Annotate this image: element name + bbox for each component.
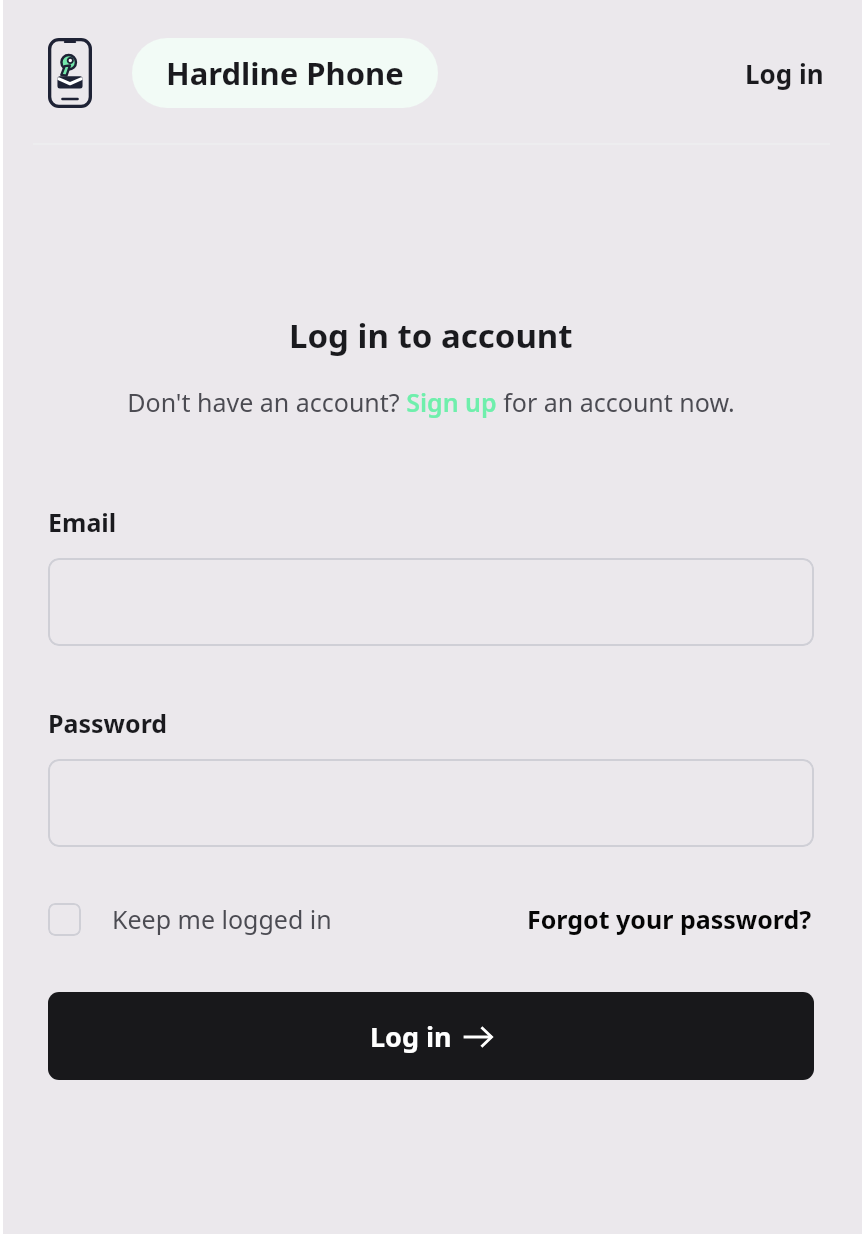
- staticText: Log in: [370, 1018, 452, 1055]
- button[interactable]: Log in: [48, 992, 814, 1080]
- staticText: Password: [48, 706, 168, 740]
- staticText: Log in: [745, 56, 824, 91]
- staticText: Don't have an account? Sign up for an ac…: [127, 385, 735, 419]
- staticText: Log in to account: [289, 313, 573, 358]
- button[interactable]: Forgot your password?: [525, 898, 814, 940]
- staticText: Keep me logged in: [112, 902, 332, 936]
- button[interactable]: Keep me logged in: [48, 902, 336, 936]
- staticText: Forgot your password?: [527, 902, 812, 936]
- button[interactable]: [48, 759, 814, 847]
- button[interactable]: Hardline Phone: [132, 38, 438, 108]
- staticText: Email: [48, 505, 117, 539]
- button[interactable]: [48, 558, 814, 646]
- button[interactable]: Log in: [739, 48, 830, 99]
- staticText: Hardline Phone: [166, 52, 404, 94]
